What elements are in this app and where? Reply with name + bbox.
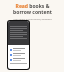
staticText: Read books & borrow content [13, 3, 52, 16]
button[interactable] [10, 47, 27, 52]
button[interactable] [10, 52, 27, 57]
button[interactable] [10, 57, 27, 62]
staticText: Your library in your pocket, anywhere [13, 18, 52, 21]
